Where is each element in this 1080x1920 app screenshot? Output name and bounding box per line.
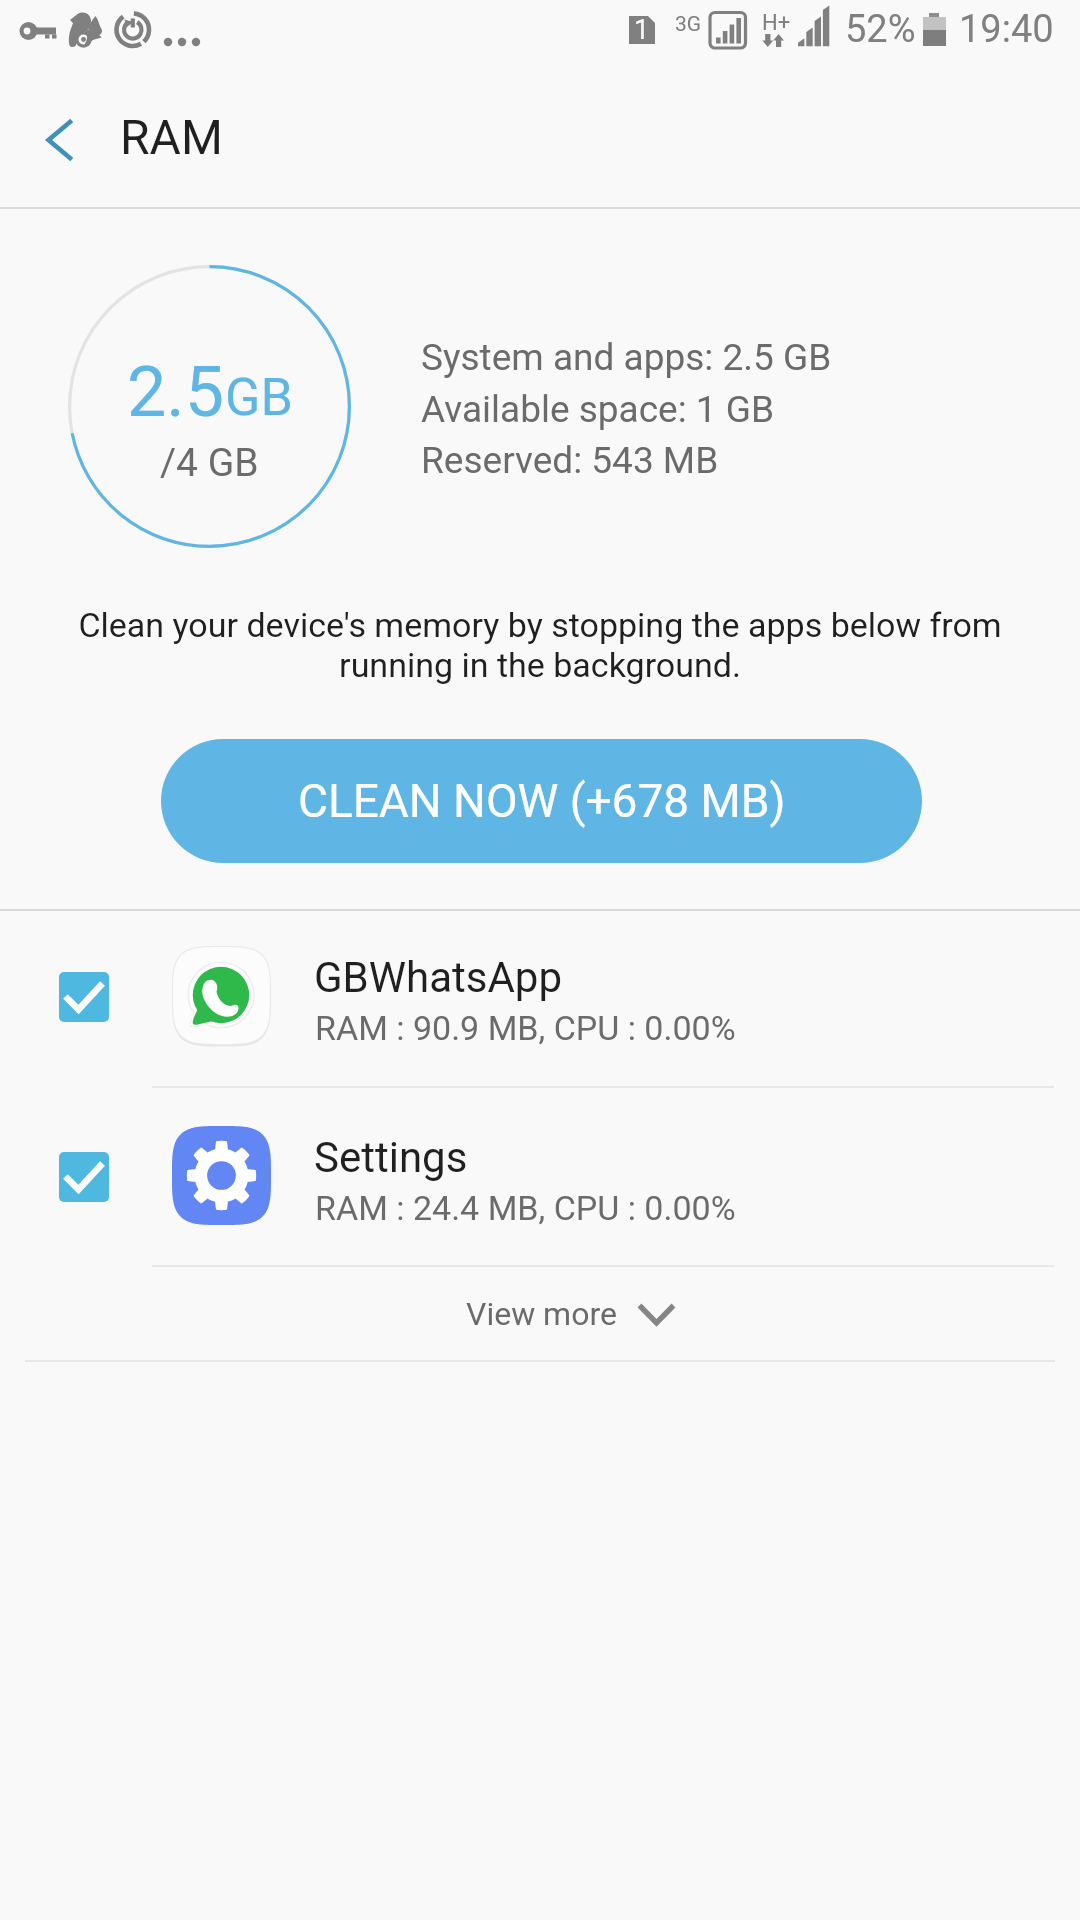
staticText: RAM [120,109,223,165]
staticText: Clean your device's memory by stopping t… [72,605,1008,685]
staticText: Available space: 1 GB [421,388,775,431]
staticText: CLEAN NOW (+678 MB) [298,774,786,828]
staticText: 2.5 [127,351,225,433]
button[interactable]: Select GBWhatsApp [0,910,1080,1086]
staticText: 3G [675,12,702,37]
staticText: GB [225,367,293,428]
staticText: 52% [845,7,916,52]
button[interactable]: Select Settings [0,1090,1080,1266]
staticText: 19:40 [959,7,1054,52]
staticText: Reserved: 543 MB [421,439,719,482]
staticText: RAM : 90.9 MB, CPU : 0.00% [315,1008,736,1048]
button[interactable]: Back [11,89,106,184]
button[interactable]: View more [0,1266,1080,1360]
staticText: System and apps: 2.5 GB [421,336,832,379]
staticText: 1 [634,14,650,46]
button[interactable]: Select Settings [59,1152,109,1202]
staticText: Settings [314,1133,468,1182]
button[interactable]: Select GBWhatsApp [59,972,109,1022]
staticText: GBWhatsApp [314,953,563,1002]
button[interactable]: CLEAN NOW (+678 MB) [161,739,922,863]
staticText: H+ [762,10,791,36]
staticText: RAM : 24.4 MB, CPU : 0.00% [315,1188,736,1228]
staticText: /4 GB [160,440,259,486]
staticText: View more [466,1295,617,1333]
